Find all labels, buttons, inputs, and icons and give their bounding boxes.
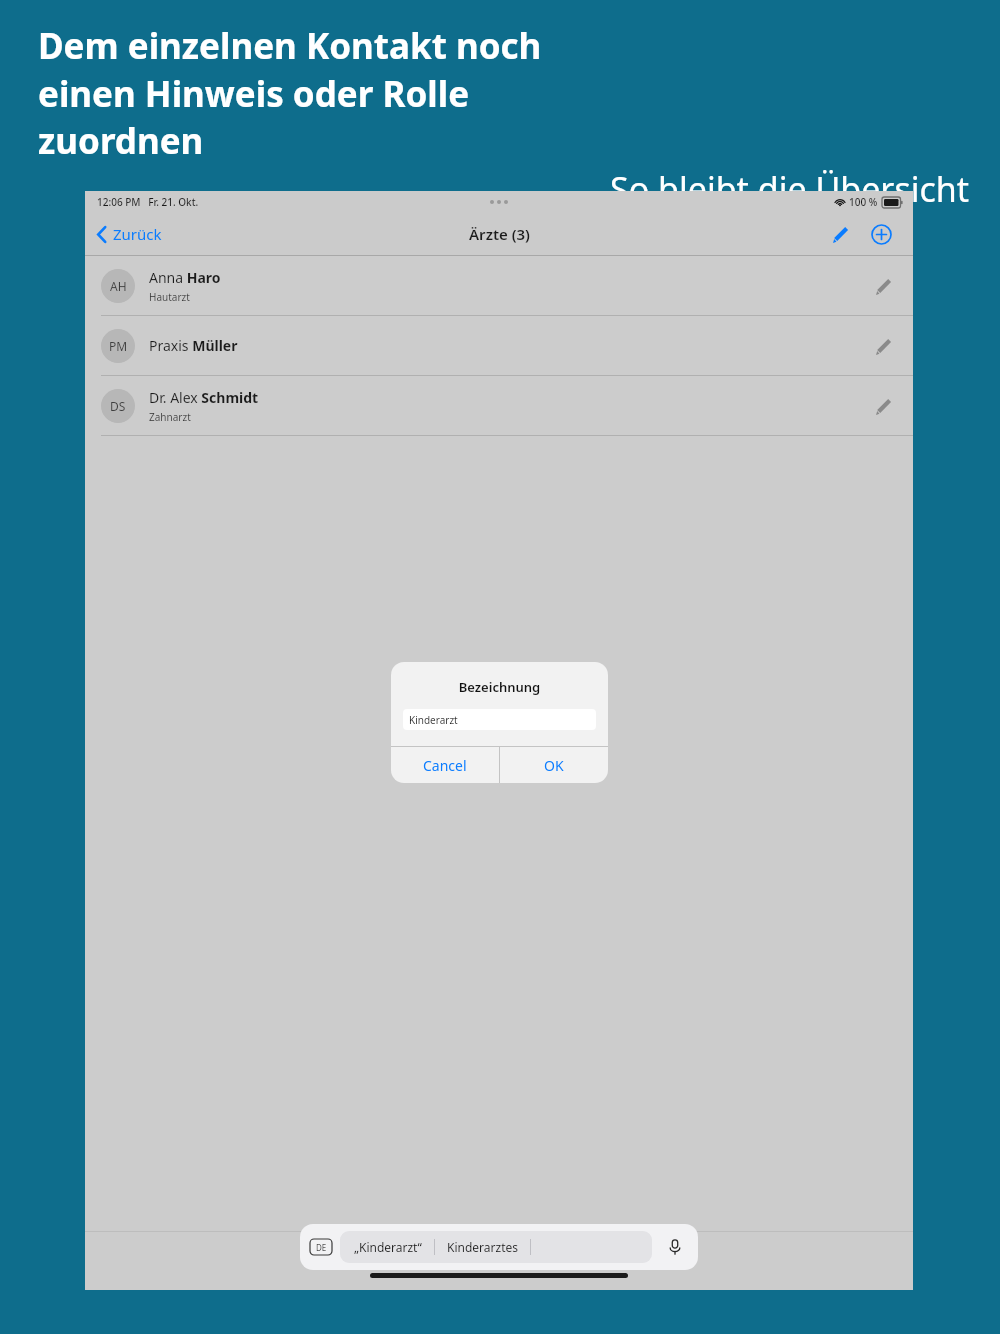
button[interactable]: OK — [500, 747, 608, 783]
staticText: Praxis Müller — [149, 336, 238, 355]
staticText: „Kinderarzt“ — [354, 1239, 422, 1255]
staticText: Anna Haro — [149, 268, 221, 287]
button[interactable]: Sprache DE — [310, 1239, 332, 1255]
staticText: DE — [316, 1242, 327, 1253]
staticText: OK — [544, 756, 564, 775]
staticText: Zahnarzt — [149, 410, 191, 424]
staticText: Hautarzt — [149, 290, 190, 304]
staticText: Kinderarztes — [447, 1239, 518, 1255]
staticText: Ärzte (3) — [469, 224, 530, 244]
button[interactable]: Kontakt bearbeiten — [865, 269, 899, 303]
staticText: So bleibt die Übersicht — [610, 166, 970, 212]
staticText: Kinderarzt — [409, 713, 458, 727]
staticText: Cancel — [423, 756, 467, 775]
button[interactable]: Diktieren — [662, 1234, 688, 1260]
button[interactable]: PM — [85, 316, 913, 375]
staticText: 12:06 PM Fr. 21. Okt. — [97, 195, 199, 209]
button[interactable]: „Kinderarzt“ — [350, 1235, 426, 1259]
staticText: AH — [110, 278, 127, 294]
button[interactable]: Zurück — [93, 220, 166, 248]
staticText: Dem einzelnen Kontakt noch einen Hinweis… — [38, 22, 542, 164]
button[interactable]: Kinderarzt — [403, 709, 596, 730]
staticText: PM — [109, 338, 128, 354]
staticText: DS — [110, 398, 126, 414]
staticText: 100 % — [849, 195, 878, 209]
staticText: Dr. Alex Schmidt — [149, 388, 259, 407]
button[interactable]: Kinderarztes — [443, 1235, 522, 1259]
button[interactable]: Bearbeiten — [823, 218, 855, 250]
button[interactable]: DS — [85, 376, 913, 435]
button[interactable]: Kontakt bearbeiten — [865, 329, 899, 363]
staticText: Zurück — [113, 224, 162, 244]
button[interactable]: Hinzufügen — [865, 218, 897, 250]
button[interactable]: Cancel — [391, 747, 499, 783]
button[interactable]: Kontakt bearbeiten — [865, 389, 899, 423]
button[interactable]: AH — [85, 256, 913, 315]
staticText: Bezeichnung — [391, 678, 608, 696]
